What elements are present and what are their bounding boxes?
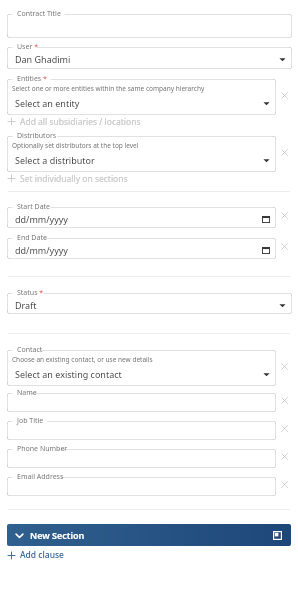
staticText: Select one or more entities within the s… <box>12 84 205 93</box>
button[interactable]: Set individually on sections <box>0 172 298 185</box>
staticText: Add all subsidiaries / locations <box>20 116 141 128</box>
staticText: Phone Number <box>17 444 68 454</box>
button[interactable]: New Section <box>7 524 291 546</box>
button[interactable]: Open User options <box>274 51 290 67</box>
staticText: dd/mm/yyyy <box>15 213 68 225</box>
button[interactable]: Clear Name <box>276 392 292 408</box>
button[interactable]: Clear Distributors <box>276 144 292 160</box>
button[interactable]: Phone Number <box>7 444 276 468</box>
staticText: Contract Title <box>17 9 61 19</box>
button[interactable]: Pick date <box>258 211 274 227</box>
staticText: New Section <box>30 529 85 541</box>
staticText: Add clause <box>20 549 64 561</box>
button[interactable]: Clear Contact <box>276 358 292 374</box>
staticText: Choose an existing contact, or use new d… <box>12 355 153 364</box>
button[interactable]: Contract Title <box>7 9 292 38</box>
button[interactable]: Clear Phone Number <box>276 448 292 464</box>
staticText: End Date <box>17 233 47 243</box>
staticText: Start Date <box>17 202 51 212</box>
staticText: Select an entity <box>15 97 80 109</box>
button[interactable]: Duplicate section <box>271 529 284 542</box>
button[interactable]: Pick date <box>258 242 274 258</box>
staticText: Entities * <box>17 74 47 84</box>
button[interactable]: Draft <box>7 288 292 314</box>
staticText: Email Address <box>17 472 64 482</box>
button[interactable]: Name <box>7 388 276 412</box>
staticText: Set individually on sections <box>20 173 128 185</box>
staticText: Draft <box>15 299 37 311</box>
button[interactable]: Open Entities options <box>258 95 274 111</box>
button[interactable]: Open Status options <box>274 297 290 313</box>
button[interactable]: Add all subsidiaries / locations <box>0 115 298 128</box>
button[interactable]: Dan Ghadimi <box>7 42 292 69</box>
button[interactable]: Choose an existing contact, or use new d… <box>7 345 276 386</box>
button[interactable]: Open Distributors options <box>258 152 274 168</box>
staticText: Dan Ghadimi <box>15 53 71 65</box>
button[interactable]: Clear Job Title <box>276 420 292 436</box>
staticText: Contact <box>17 345 43 355</box>
staticText: Optionally set distributors at the top l… <box>12 141 139 150</box>
button[interactable]: Clear End Date <box>276 238 292 254</box>
staticText: Distributors <box>17 131 57 141</box>
button[interactable]: Clear Start Date <box>276 207 292 223</box>
button[interactable]: Open Contact options <box>258 366 274 382</box>
staticText: User * <box>17 42 38 52</box>
button[interactable]: Optionally set distributors at the top l… <box>7 131 276 172</box>
staticText: Status * <box>17 288 44 298</box>
staticText: Select a distributor <box>15 154 95 166</box>
staticText: Job Title <box>17 416 44 426</box>
button[interactable]: Select one or more entities within the s… <box>7 74 276 115</box>
button[interactable]: Job Title <box>7 416 276 440</box>
button[interactable]: Clear Entities <box>276 87 292 103</box>
button[interactable]: Add clause <box>0 548 298 562</box>
staticText: Name <box>17 388 37 398</box>
button[interactable]: dd/mm/yyyy <box>7 233 276 259</box>
staticText: dd/mm/yyyy <box>15 244 68 256</box>
button[interactable]: dd/mm/yyyy <box>7 202 276 228</box>
staticText: Select an existing contact <box>15 368 122 380</box>
button[interactable]: Clear Email Address <box>276 476 292 492</box>
button[interactable]: Email Address <box>7 472 276 496</box>
